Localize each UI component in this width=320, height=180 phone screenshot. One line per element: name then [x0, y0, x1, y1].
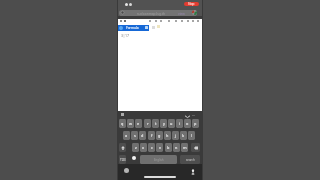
- staticText: 3|17: [121, 33, 130, 38]
- button[interactable]: m: [181, 143, 188, 152]
- staticText: k: [182, 133, 185, 138]
- button[interactable]: Account: [192, 10, 197, 15]
- staticText: a: [125, 133, 128, 138]
- staticText: e: [137, 121, 140, 126]
- button[interactable]: Backspace: [191, 143, 200, 152]
- button[interactable]: q: [119, 119, 126, 128]
- button[interactable]: Emoji: [132, 156, 136, 160]
- button[interactable]: s: [131, 131, 138, 140]
- button[interactable]: u: [168, 119, 175, 128]
- staticText: y: [163, 121, 165, 126]
- staticText: x: [142, 145, 145, 150]
- button[interactable]: w: [127, 119, 134, 128]
- staticText: u: [170, 121, 173, 126]
- button[interactable]: Recording indicator: [124, 168, 129, 173]
- button[interactable]: Formula: [118, 25, 149, 31]
- staticText: d: [141, 133, 144, 138]
- staticText: j: [175, 133, 176, 138]
- staticText: ?123: [120, 158, 126, 162]
- staticText: n: [175, 145, 178, 150]
- button[interactable]: p: [192, 119, 199, 128]
- button[interactable]: z: [132, 143, 139, 152]
- button[interactable]: Space: [140, 155, 177, 164]
- button[interactable]: Microphone: [190, 169, 196, 175]
- button[interactable]: k: [180, 131, 187, 140]
- staticText: c: [151, 145, 153, 150]
- button[interactable]: search: [180, 155, 200, 164]
- button[interactable]: n: [173, 143, 180, 152]
- button[interactable]: h: [164, 131, 171, 140]
- staticText: m: [183, 145, 187, 150]
- staticText: English: [154, 158, 164, 162]
- staticText: r: [147, 121, 149, 126]
- staticText: z: [135, 145, 137, 150]
- staticText: view: [178, 11, 185, 15]
- button[interactable]: f: [148, 131, 155, 140]
- button[interactable]: g: [156, 131, 163, 140]
- staticText: v: [159, 145, 161, 150]
- button[interactable]: Shift: [119, 143, 126, 152]
- button[interactable]: r: [144, 119, 151, 128]
- button[interactable]: b: [165, 143, 172, 152]
- button[interactable]: x: [140, 143, 147, 152]
- button[interactable]: d: [139, 131, 146, 140]
- staticText: b: [167, 145, 170, 150]
- staticText: p: [194, 121, 197, 126]
- button[interactable]: Expand suggestions: [185, 114, 190, 119]
- staticText: w: [129, 121, 132, 126]
- button[interactable]: j: [172, 131, 179, 140]
- button[interactable]: a: [123, 131, 130, 140]
- button[interactable]: c: [148, 143, 155, 152]
- button[interactable]: t: [152, 119, 159, 128]
- staticText: q: [121, 121, 124, 126]
- staticText: o: [186, 121, 189, 126]
- button[interactable]: Record: [184, 2, 199, 6]
- button[interactable]: y: [160, 119, 167, 128]
- button[interactable]: e: [135, 119, 142, 128]
- staticText: Stop: [188, 2, 195, 6]
- staticText: t: [155, 121, 157, 126]
- staticText: ...: [192, 112, 196, 117]
- button[interactable]: v: [156, 143, 163, 152]
- staticText: s: [134, 133, 136, 138]
- button[interactable]: ?123: [119, 155, 126, 164]
- staticText: search: [186, 158, 195, 162]
- button[interactable]: i: [176, 119, 183, 128]
- staticText: h: [166, 133, 169, 138]
- staticText: g: [158, 133, 161, 138]
- button[interactable]: l: [188, 131, 195, 140]
- button[interactable]: o: [184, 119, 191, 128]
- staticText: i: [179, 121, 180, 126]
- staticText: sudoonmapl.sg.th: [137, 11, 166, 15]
- button[interactable]: [119, 10, 197, 16]
- staticText: Formula: [126, 26, 139, 30]
- staticText: f: [151, 133, 153, 138]
- staticText: l: [191, 133, 192, 138]
